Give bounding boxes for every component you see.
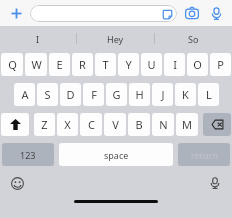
staticText: U: [147, 57, 156, 72]
button[interactable]: Stickers: [30, 5, 177, 22]
staticText: V: [112, 117, 119, 132]
button[interactable]: X: [57, 113, 78, 136]
button[interactable]: space: [59, 143, 173, 166]
staticText: D: [66, 87, 75, 102]
staticText: M: [182, 117, 192, 132]
button[interactable]: Delete: [203, 113, 231, 136]
button[interactable]: So: [155, 26, 232, 51]
staticText: return: [191, 149, 218, 161]
staticText: C: [88, 117, 95, 132]
button[interactable]: K: [175, 83, 196, 106]
staticText: I: [36, 33, 40, 45]
button[interactable]: P: [210, 53, 231, 76]
button[interactable]: G: [106, 83, 127, 106]
button[interactable]: R: [72, 53, 93, 76]
staticText: 123: [20, 149, 36, 161]
staticText: F: [91, 87, 97, 102]
button[interactable]: Camera: [182, 3, 202, 23]
other: Stickers: [161, 8, 173, 20]
button[interactable]: T: [95, 53, 116, 76]
staticText: N: [159, 117, 168, 132]
staticText: W: [31, 57, 42, 72]
staticText: R: [79, 57, 86, 72]
button[interactable]: E: [49, 53, 70, 76]
staticText: So: [188, 33, 199, 45]
button[interactable]: H: [129, 83, 150, 106]
staticText: space: [104, 149, 129, 161]
button[interactable]: B: [128, 113, 150, 136]
staticText: Hey: [107, 33, 124, 45]
staticText: P: [217, 57, 224, 72]
button[interactable]: Z: [34, 113, 55, 136]
staticText: K: [182, 87, 189, 102]
staticText: T: [102, 57, 109, 72]
button[interactable]: Dictation: [206, 174, 224, 192]
staticText: G: [112, 87, 121, 102]
staticText: Y: [125, 57, 132, 72]
staticText: X: [64, 117, 71, 132]
staticText: I: [173, 57, 177, 72]
button[interactable]: Q: [1, 53, 23, 76]
staticText: Z: [41, 117, 48, 132]
button[interactable]: V: [104, 113, 126, 136]
button[interactable]: 123: [2, 143, 54, 166]
button[interactable]: Emoji: [8, 174, 26, 192]
button[interactable]: J: [152, 83, 173, 106]
staticText: S: [44, 87, 51, 102]
button[interactable]: Audio message: [206, 3, 226, 23]
staticText: O: [193, 57, 202, 72]
button[interactable]: L: [198, 83, 219, 106]
staticText: J: [161, 87, 165, 102]
button[interactable]: return: [178, 143, 230, 166]
button[interactable]: A: [14, 83, 35, 106]
staticText: Q: [8, 57, 17, 72]
button[interactable]: M: [176, 113, 198, 136]
staticText: B: [135, 117, 143, 132]
button[interactable]: U: [141, 53, 162, 76]
button[interactable]: O: [187, 53, 208, 76]
button[interactable]: I: [164, 53, 185, 76]
button[interactable]: Shift: [1, 113, 29, 136]
button[interactable]: F: [83, 83, 104, 106]
button[interactable]: D: [60, 83, 81, 106]
staticText: L: [206, 87, 212, 102]
staticText: A: [21, 87, 29, 102]
button[interactable]: C: [80, 113, 102, 136]
button[interactable]: Add attachment: [6, 3, 26, 23]
button[interactable]: I: [0, 26, 76, 51]
button[interactable]: Y: [118, 53, 139, 76]
staticText: E: [56, 57, 63, 72]
button[interactable]: Hey: [77, 26, 154, 51]
button[interactable]: N: [152, 113, 174, 136]
button[interactable]: W: [25, 53, 47, 76]
staticText: H: [135, 87, 144, 102]
button[interactable]: S: [37, 83, 58, 106]
